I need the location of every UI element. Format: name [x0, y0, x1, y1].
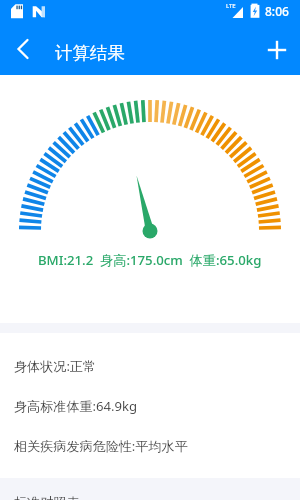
staticText: 8:06	[265, 3, 289, 19]
staticText: BMI:21.2 身高:175.0cm 体重:65.0kg	[38, 251, 262, 269]
button[interactable]: 身高标准体重:64.9kg	[0, 386, 300, 426]
staticText: LTE	[226, 2, 236, 10]
button[interactable]: 标准对照表	[0, 482, 300, 500]
button[interactable]: 身体状况:正常	[0, 346, 300, 386]
button[interactable]: Back	[0, 26, 46, 72]
button[interactable]: Add	[254, 26, 300, 72]
staticText: 身高标准体重:64.9kg	[14, 397, 138, 415]
button[interactable]: 相关疾病发病危险性:平均水平	[0, 426, 300, 466]
staticText: 计算结果	[55, 42, 125, 64]
staticText: 相关疾病发病危险性:平均水平	[14, 437, 188, 455]
staticText: 身体状况:正常	[14, 357, 97, 375]
staticText: 标准对照表	[14, 494, 80, 500]
